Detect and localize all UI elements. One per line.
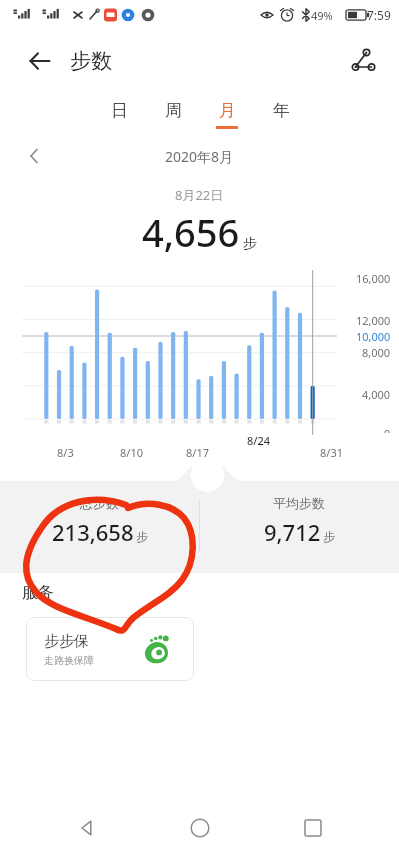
staticText: 步	[136, 529, 148, 544]
button[interactable]: 周	[146, 92, 200, 136]
staticText: 周	[165, 100, 182, 121]
staticText: 10,000	[356, 329, 391, 344]
staticText: 8月22日	[175, 186, 224, 204]
button[interactable]: Back	[18, 39, 62, 83]
staticText: 步数	[70, 48, 112, 74]
staticText: 8/10	[120, 445, 143, 460]
staticText: 8/24	[247, 433, 271, 448]
button[interactable]: Share	[341, 39, 385, 83]
button[interactable]: Home	[172, 800, 228, 856]
button[interactable]: Back	[58, 800, 114, 856]
staticText: 年	[273, 100, 290, 121]
staticText: 日	[111, 100, 128, 121]
staticText: 12,000	[356, 313, 391, 328]
staticText: 0	[384, 426, 391, 433]
staticText: 213,658	[52, 517, 134, 547]
button[interactable]: Previous month	[16, 138, 52, 174]
button[interactable]: 总步数	[0, 495, 199, 573]
staticText: 9,712	[264, 517, 321, 547]
staticText: 16,000	[356, 271, 391, 286]
button[interactable]: 月	[200, 92, 254, 136]
staticText: 8/17	[186, 445, 209, 460]
button[interactable]: 步步保	[26, 617, 194, 681]
staticText: 步步保	[44, 632, 89, 651]
staticText: 2020年8月	[165, 147, 234, 166]
button[interactable]: Recents	[285, 800, 341, 856]
staticText: 步	[323, 529, 335, 544]
staticText: 4,656	[142, 206, 240, 258]
staticText: 4,000	[362, 387, 391, 402]
staticText: 49%	[311, 8, 333, 23]
staticText: 8/3	[57, 445, 74, 460]
staticText: 平均步数	[273, 495, 325, 511]
button[interactable]: 年	[254, 92, 308, 136]
staticText: 走路换保障	[44, 654, 94, 667]
button[interactable]: 日	[92, 92, 146, 136]
staticText: 服务	[22, 583, 54, 603]
staticText: 总步数	[80, 495, 119, 511]
button[interactable]: 平均步数	[199, 495, 399, 573]
staticText: 步	[243, 235, 257, 253]
staticText: 月	[219, 100, 236, 121]
staticText: 8/31	[320, 445, 343, 460]
staticText: 7:59	[367, 7, 391, 23]
staticText: 8,000	[362, 345, 391, 360]
